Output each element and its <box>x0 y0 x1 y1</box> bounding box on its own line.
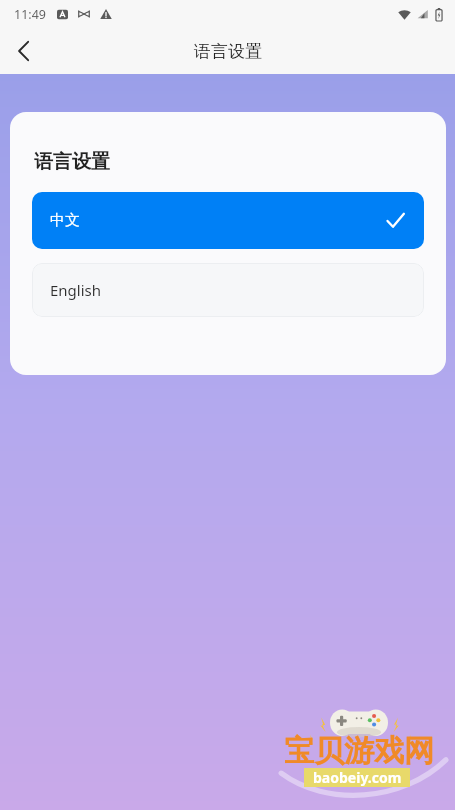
button[interactable]: 中文 <box>32 192 424 249</box>
staticText: English <box>50 280 102 300</box>
staticText: 宝贝游戏网 <box>284 732 434 770</box>
staticText: 语言设置 <box>194 41 262 62</box>
button[interactable]: Back <box>0 28 46 74</box>
staticText: 中文 <box>50 211 80 230</box>
button[interactable]: English <box>32 263 424 317</box>
staticText: 11:49 <box>14 6 46 23</box>
staticText: baobeiy.com <box>313 768 402 787</box>
staticText: 语言设置 <box>34 150 110 174</box>
